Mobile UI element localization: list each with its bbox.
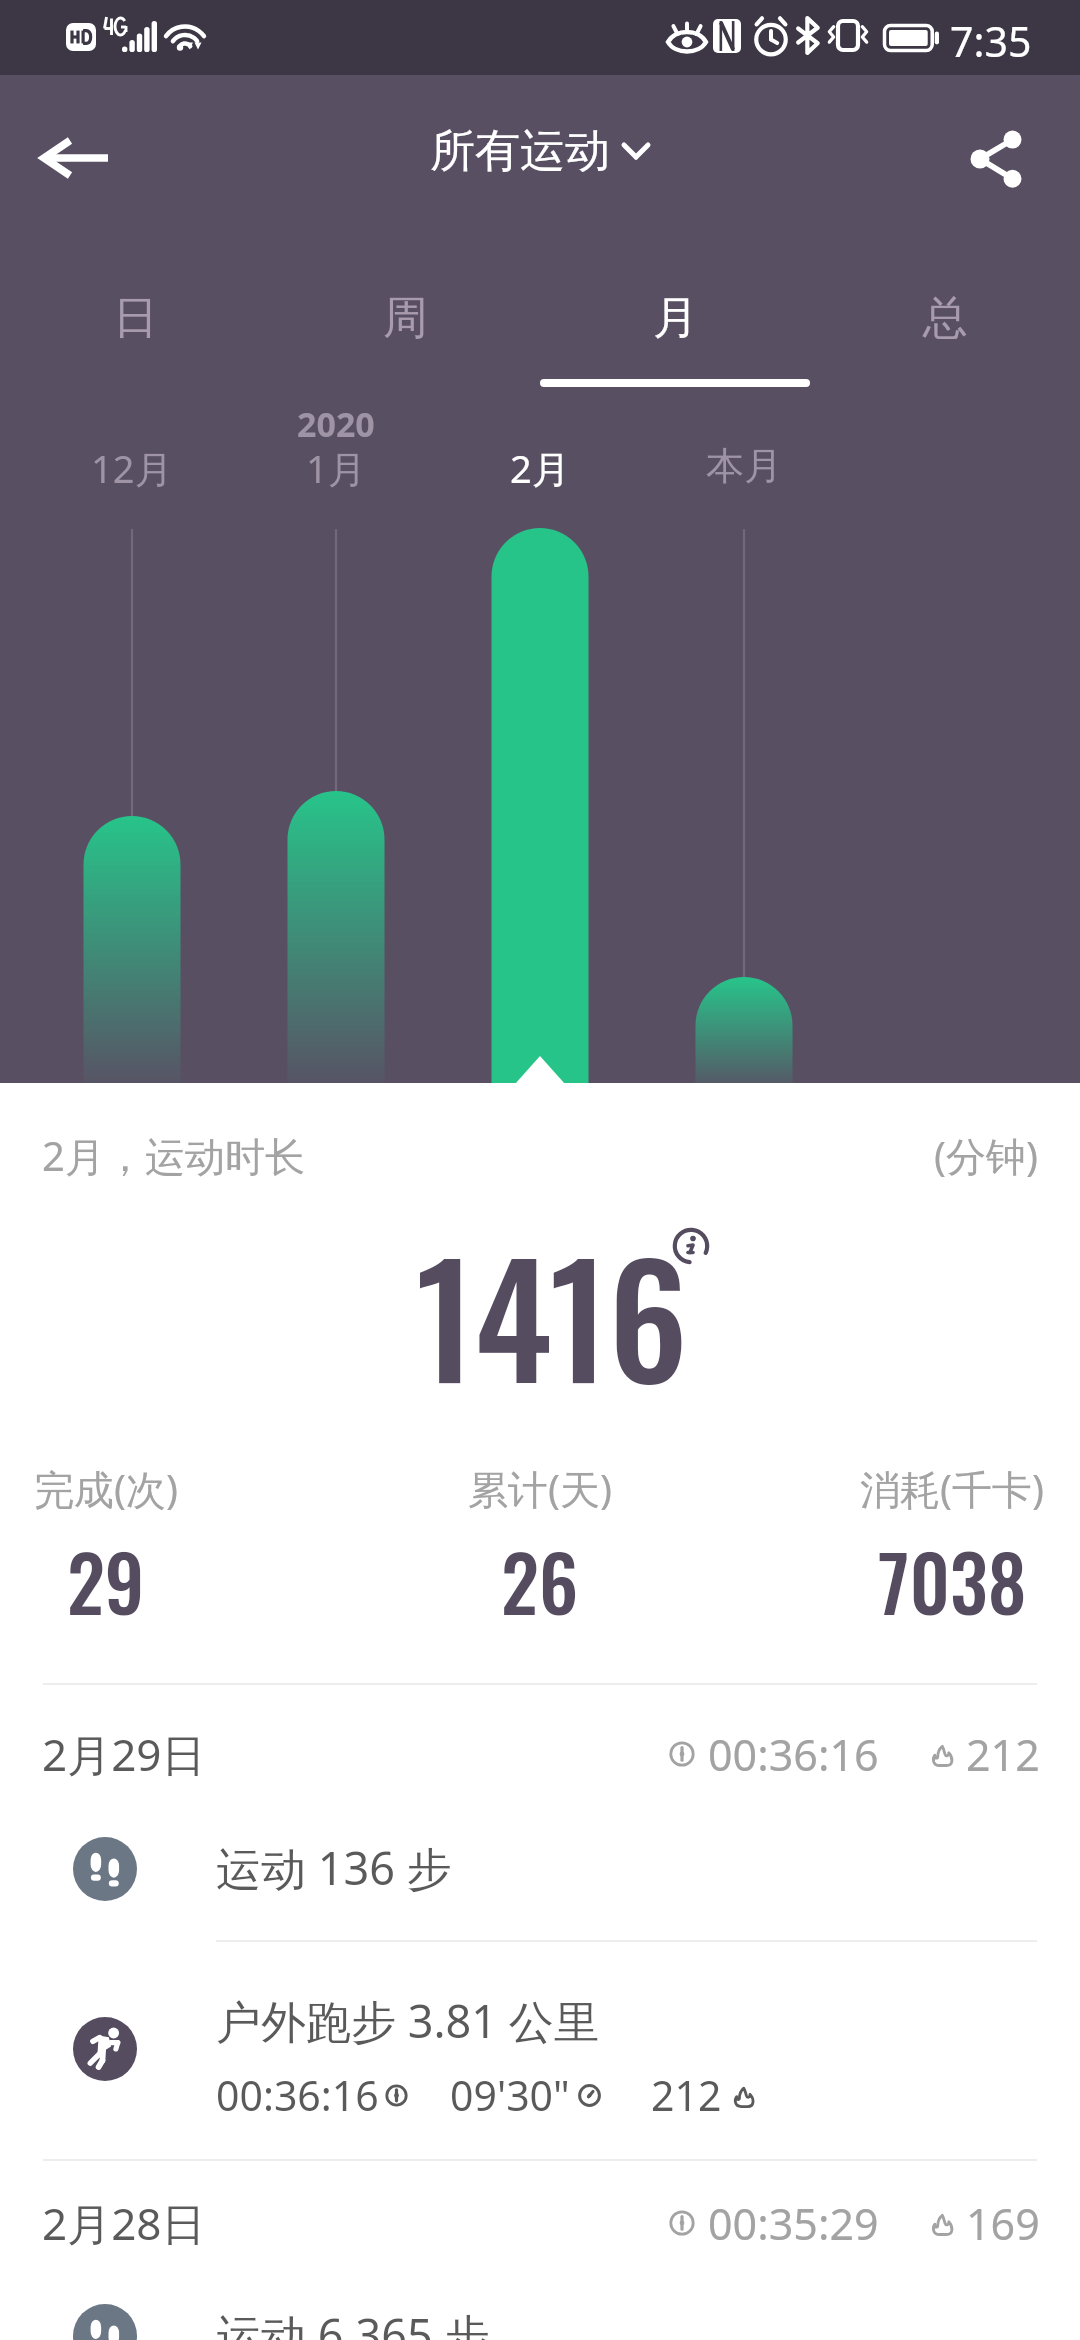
staticText: 消耗(千卡) xyxy=(860,1461,1044,1516)
staticText: 本月 xyxy=(706,442,782,490)
staticText: 总 xyxy=(923,290,968,347)
staticText: 运动 6,365 步 xyxy=(216,2304,490,2340)
staticText: 累计(天) xyxy=(468,1461,612,1516)
staticText: 月 xyxy=(653,290,698,347)
staticText: 周 xyxy=(383,290,428,347)
button[interactable]: 12月 xyxy=(22,442,242,502)
button[interactable]: 户外跑步 3.81 公里 xyxy=(0,1978,1080,2156)
staticText: 09'30" xyxy=(450,2067,570,2123)
button[interactable]: 本月 xyxy=(634,442,854,502)
button[interactable]: 2月 xyxy=(430,442,650,502)
staticText: (分钟) xyxy=(934,1128,1038,1183)
button[interactable]: 周 xyxy=(270,262,540,392)
staticText: 1月 xyxy=(306,442,366,494)
button[interactable]: 月 xyxy=(540,262,810,392)
staticText: 26 xyxy=(501,1524,579,1637)
staticText: 212 xyxy=(966,1725,1040,1784)
staticText: 29 xyxy=(67,1524,145,1637)
staticText: 完成(次) xyxy=(34,1461,178,1516)
staticText: 户外跑步 3.81 公里 xyxy=(216,1990,599,2051)
staticText: 2020 xyxy=(297,401,375,447)
staticText: 12月 xyxy=(91,442,173,494)
staticText: 7038 xyxy=(878,1524,1027,1637)
button[interactable]: 1月 xyxy=(226,442,446,502)
staticText: 日 xyxy=(113,290,158,347)
button[interactable]: 运动 136 步 xyxy=(0,1813,1080,1925)
button[interactable]: 2月29日 xyxy=(0,1706,1080,1802)
staticText: 2月 xyxy=(510,442,570,494)
button[interactable]: 日 xyxy=(0,262,270,392)
staticText: 2月，运动时长 xyxy=(42,1128,305,1183)
button[interactable]: 运动 6,365 步 xyxy=(0,2280,1080,2340)
staticText: 所有运动 xyxy=(430,123,610,180)
staticText: 00:35:29 xyxy=(708,2194,879,2253)
button[interactable]: 2月28日 xyxy=(0,2175,1080,2271)
button[interactable]: Share xyxy=(955,110,1051,206)
staticText: 运动 136 步 xyxy=(216,1837,452,1898)
button[interactable]: 所有运动 xyxy=(430,112,650,190)
staticText: 169 xyxy=(966,2194,1040,2253)
staticText: 2月29日 xyxy=(42,1724,206,1784)
button[interactable]: Info xyxy=(666,1221,716,1271)
staticText: 7:35 xyxy=(950,13,1032,69)
staticText: 00:36:16 xyxy=(708,1725,879,1784)
staticText: 00:36:16 xyxy=(216,2067,379,2123)
button[interactable]: 总 xyxy=(810,262,1080,392)
staticText: 212 xyxy=(651,2067,722,2123)
staticText: 2月28日 xyxy=(42,2193,206,2253)
staticText: 1416 xyxy=(416,1200,688,1427)
button[interactable]: Back xyxy=(10,108,110,208)
